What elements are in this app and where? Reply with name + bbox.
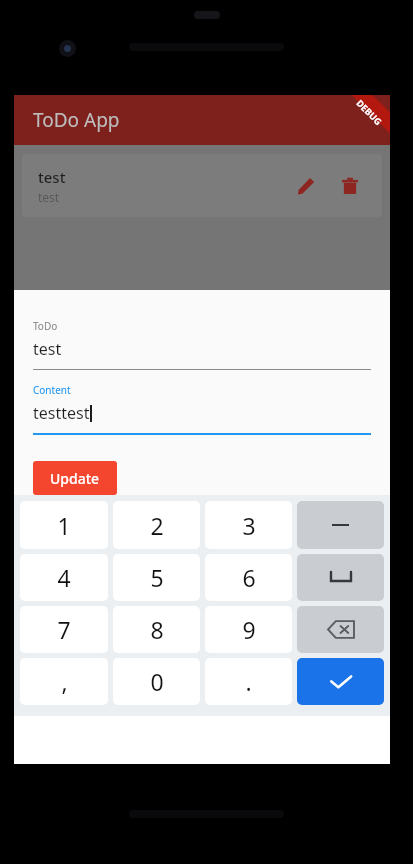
staticText: 0 bbox=[150, 666, 164, 697]
staticText: test bbox=[38, 189, 60, 205]
staticText: DEBUG bbox=[354, 97, 385, 127]
button[interactable]: . bbox=[205, 658, 292, 705]
staticText: test bbox=[38, 167, 66, 187]
staticText: ToDo bbox=[33, 319, 58, 333]
button[interactable]: back bbox=[297, 606, 384, 653]
staticText: 4 bbox=[57, 562, 71, 593]
button[interactable]: 4 bbox=[20, 554, 108, 601]
staticText: , bbox=[61, 666, 68, 697]
staticText: 1 bbox=[57, 510, 71, 541]
button[interactable]: 8 bbox=[113, 606, 200, 653]
staticText: 2 bbox=[150, 510, 164, 541]
button[interactable]: minus bbox=[297, 501, 384, 549]
button[interactable]: 2 bbox=[113, 501, 200, 549]
staticText: 3 bbox=[242, 510, 256, 541]
staticText: 5 bbox=[150, 562, 164, 593]
staticText: test bbox=[33, 338, 62, 360]
staticText: testtest bbox=[33, 402, 90, 424]
staticText: . bbox=[245, 666, 252, 697]
button[interactable]: , bbox=[20, 658, 108, 705]
button[interactable]: 5 bbox=[113, 554, 200, 601]
button[interactable]: 0 bbox=[113, 658, 200, 705]
button[interactable]: 1 bbox=[20, 501, 108, 549]
button[interactable]: 3 bbox=[205, 501, 292, 549]
staticText: 9 bbox=[242, 614, 256, 645]
button[interactable]: test bbox=[22, 154, 382, 217]
staticText: 6 bbox=[242, 562, 256, 593]
button[interactable]: 9 bbox=[205, 606, 292, 653]
staticText: 7 bbox=[57, 614, 71, 645]
button[interactable]: 7 bbox=[20, 606, 108, 653]
staticText: Content bbox=[33, 383, 71, 397]
staticText: Update bbox=[50, 469, 100, 487]
button[interactable]: 6 bbox=[205, 554, 292, 601]
staticText: ToDo App bbox=[33, 107, 120, 133]
staticText: 8 bbox=[150, 614, 164, 645]
button[interactable]: Edit bbox=[290, 170, 322, 202]
button[interactable]: Delete bbox=[334, 170, 366, 202]
button[interactable]: Update bbox=[33, 461, 117, 495]
button[interactable]: ok bbox=[297, 658, 384, 705]
button[interactable]: space bbox=[297, 554, 384, 601]
